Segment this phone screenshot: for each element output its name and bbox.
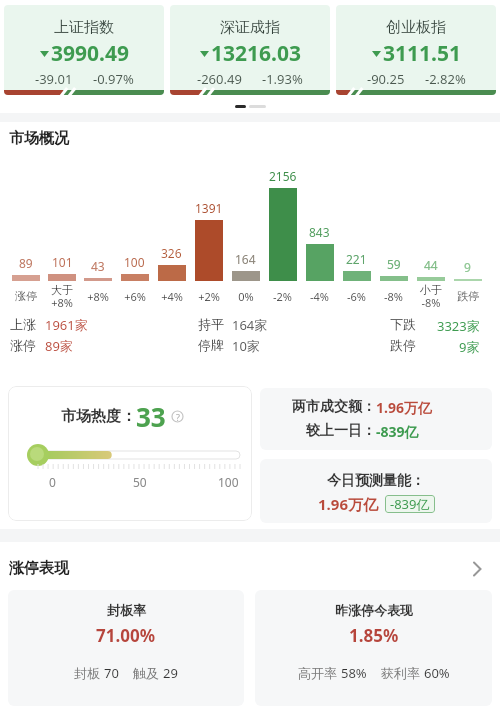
staticText: -2.82% [425, 70, 466, 88]
staticText: +2% [198, 289, 220, 304]
staticText: 今日预测量能： [327, 472, 425, 490]
staticText: -8% [384, 289, 403, 304]
staticText: -90.25 [367, 70, 405, 88]
staticText: 58% [341, 664, 367, 682]
staticText: 70 [104, 664, 119, 682]
staticText: -4% [310, 289, 329, 304]
staticText: 3990.49 [51, 39, 129, 68]
staticText: 昨涨停今表现 [335, 602, 413, 618]
staticText: 1961家 [45, 316, 88, 334]
staticText: 44 [424, 257, 438, 273]
staticText: 获利率 [381, 664, 424, 682]
staticText: 50 [133, 474, 147, 490]
staticText: 43 [91, 258, 105, 274]
staticText: -0.97% [93, 70, 134, 88]
staticText: 上涨 [10, 316, 36, 332]
button[interactable]: 封板率 [8, 590, 244, 706]
staticText: 100 [124, 254, 145, 270]
staticText: 下跌 [390, 316, 416, 332]
staticText: 33 [136, 399, 166, 434]
staticText: 0% [238, 289, 254, 304]
staticText: 29 [163, 664, 178, 682]
staticText: 持平 [198, 316, 224, 332]
staticText: 60% [424, 664, 450, 682]
staticText: 13216.03 [211, 39, 301, 68]
staticText: 9 [464, 259, 471, 275]
button[interactable]: 上证指数 [4, 5, 164, 95]
staticText: 两市成交额： [292, 398, 376, 416]
staticText: 101 [52, 254, 73, 270]
staticText: 10家 [232, 337, 260, 355]
staticText: 9家 [459, 338, 480, 356]
button[interactable]: 今日预测量能： [260, 459, 492, 523]
staticText: -39.01 [35, 70, 73, 88]
staticText: 89 [19, 255, 33, 271]
staticText: 小于 -8% [420, 283, 442, 310]
staticText: ? [176, 411, 180, 423]
button[interactable]: 市场热度： [8, 386, 252, 521]
staticText: 0 [49, 474, 56, 490]
staticText: 3323家 [437, 317, 480, 335]
staticText: 跌停 [390, 337, 416, 353]
staticText: -839亿 [390, 495, 430, 513]
staticText: 封板 [74, 664, 104, 682]
staticText: 3111.51 [383, 39, 461, 68]
staticText: 221 [346, 251, 367, 267]
staticText: -2% [273, 289, 292, 304]
staticText: -839亿 [376, 422, 419, 441]
staticText: 59 [387, 256, 401, 272]
staticText: 1.96万亿 [318, 494, 378, 514]
staticText: 创业板指 [386, 18, 446, 37]
staticText: +6% [124, 289, 146, 304]
staticText: 封板率 [107, 602, 146, 618]
staticText: 停牌 [198, 337, 224, 353]
staticText: 843 [309, 224, 330, 240]
staticText: 较上一日： [306, 422, 376, 440]
staticText: 涨停 [15, 289, 37, 303]
staticText: -1.93% [262, 70, 303, 88]
staticText: 大于 +8% [51, 283, 73, 310]
staticText: 89家 [45, 337, 73, 355]
staticText: 深证成指 [220, 18, 280, 37]
staticText: 1.85% [349, 624, 399, 647]
staticText: 上证指数 [54, 18, 114, 37]
staticText: 1391 [195, 200, 223, 216]
staticText: 71.00% [96, 624, 156, 647]
button[interactable]: 两市成交额： [260, 388, 492, 450]
staticText: 触及 [133, 664, 163, 682]
staticText: 市场热度： [61, 407, 136, 426]
staticText: 326 [161, 245, 182, 261]
button[interactable]: 涨停表现 [9, 559, 491, 578]
staticText: 市场概况 [9, 129, 69, 148]
staticText: 164家 [232, 316, 268, 334]
button[interactable]: 深证成指 [170, 5, 330, 95]
staticText: 涨停表现 [9, 559, 69, 578]
button[interactable]: 昨涨停今表现 [255, 590, 492, 706]
staticText: 涨停 [10, 337, 36, 353]
staticText: -260.49 [197, 70, 242, 88]
staticText: 1.96万亿 [376, 398, 432, 417]
staticText: 高开率 [298, 664, 341, 682]
staticText: 2156 [269, 168, 297, 184]
staticText: +4% [161, 289, 183, 304]
staticText: -6% [347, 289, 366, 304]
staticText: 跌停 [457, 289, 479, 303]
staticText: 100 [218, 474, 239, 490]
staticText: 164 [235, 251, 256, 267]
staticText: +8% [87, 289, 109, 304]
button[interactable]: 创业板指 [336, 5, 496, 95]
